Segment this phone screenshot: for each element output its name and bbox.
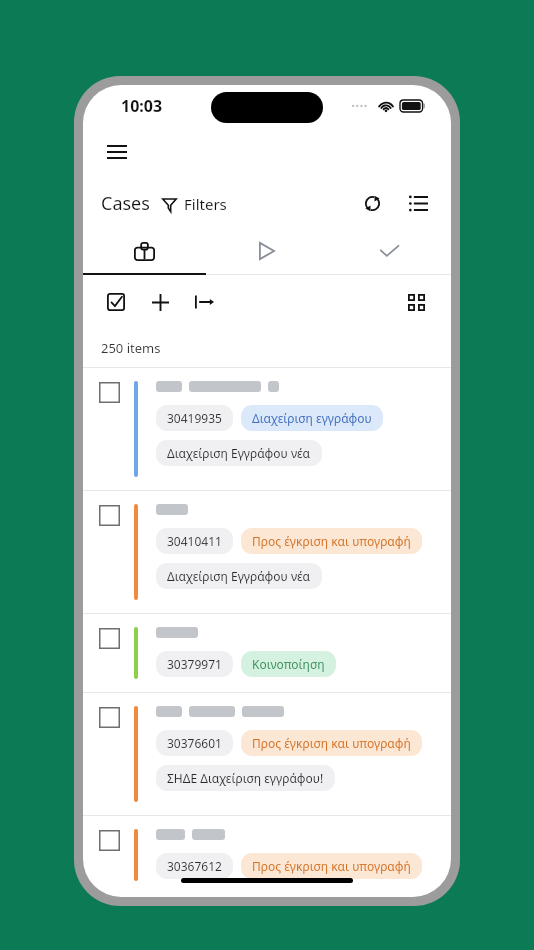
staticText: Προς έγκριση και υπογραφή [252, 735, 411, 751]
button[interactable]: Select item [83, 816, 451, 894]
button[interactable]: Select item [83, 491, 451, 613]
button[interactable]: List view [399, 184, 437, 222]
staticText: Κοινοποίηση [252, 656, 325, 672]
staticText: 30367612 [167, 858, 222, 874]
button[interactable]: Προς έγκριση και υπογραφή [241, 730, 422, 756]
button[interactable]: Διαχείριση Εγγράφου νέα [156, 563, 322, 589]
button[interactable]: Export [185, 283, 223, 321]
button[interactable]: In progress tab [205, 229, 328, 273]
staticText: Διαχείριση Εγγράφου νέα [167, 568, 311, 584]
staticText: Filters [184, 194, 227, 214]
button[interactable]: 30376601 [156, 730, 233, 756]
button[interactable]: 30419935 [156, 405, 233, 431]
staticText: 10:03 [121, 95, 163, 117]
button[interactable]: Διαχείριση εγγράφου [241, 405, 383, 431]
button[interactable]: Add [141, 283, 179, 321]
button[interactable]: Select all [97, 283, 135, 321]
button[interactable]: Select item [83, 614, 451, 692]
staticText: Cases [101, 191, 150, 216]
button[interactable]: Διαχείριση Εγγράφου νέα [156, 440, 322, 466]
button[interactable]: Grid view [397, 283, 435, 321]
button[interactable]: Completed tab [328, 229, 451, 273]
button[interactable]: Select item [99, 628, 120, 649]
staticText: 250 items [101, 339, 161, 357]
button[interactable]: Menu [97, 132, 137, 172]
button[interactable]: Refresh [353, 184, 391, 222]
staticText: 30376601 [167, 735, 222, 751]
button[interactable]: ΣΗΔΕ Διαχείριση εγγράφου! [156, 765, 335, 791]
staticText: Προς έγκριση και υπογραφή [252, 858, 411, 874]
staticText: 30410411 [167, 533, 222, 549]
button[interactable]: Προς έγκριση και υπογραφή [241, 853, 422, 879]
button[interactable]: Κοινοποίηση [241, 651, 336, 677]
button[interactable]: Select item [99, 382, 120, 403]
staticText: ΣΗΔΕ Διαχείριση εγγράφου! [167, 770, 324, 786]
button[interactable]: Filters [162, 194, 227, 214]
staticText: 30379971 [167, 656, 222, 672]
button[interactable]: 30367612 [156, 853, 233, 879]
button[interactable]: 30379971 [156, 651, 233, 677]
button[interactable]: Select item [83, 693, 451, 815]
button[interactable]: Προς έγκριση και υπογραφή [241, 528, 422, 554]
staticText: Προς έγκριση και υπογραφή [252, 533, 411, 549]
button[interactable]: 30410411 [156, 528, 233, 554]
button[interactable]: Select item [99, 505, 120, 526]
button[interactable]: Select item [99, 707, 120, 728]
staticText: Διαχείριση Εγγράφου νέα [167, 445, 311, 461]
button[interactable]: Cases tab [83, 229, 205, 273]
button[interactable]: Select item [99, 830, 120, 851]
staticText: 30419935 [167, 410, 222, 426]
button[interactable]: Select item [83, 368, 451, 490]
staticText: Διαχείριση εγγράφου [252, 410, 372, 426]
